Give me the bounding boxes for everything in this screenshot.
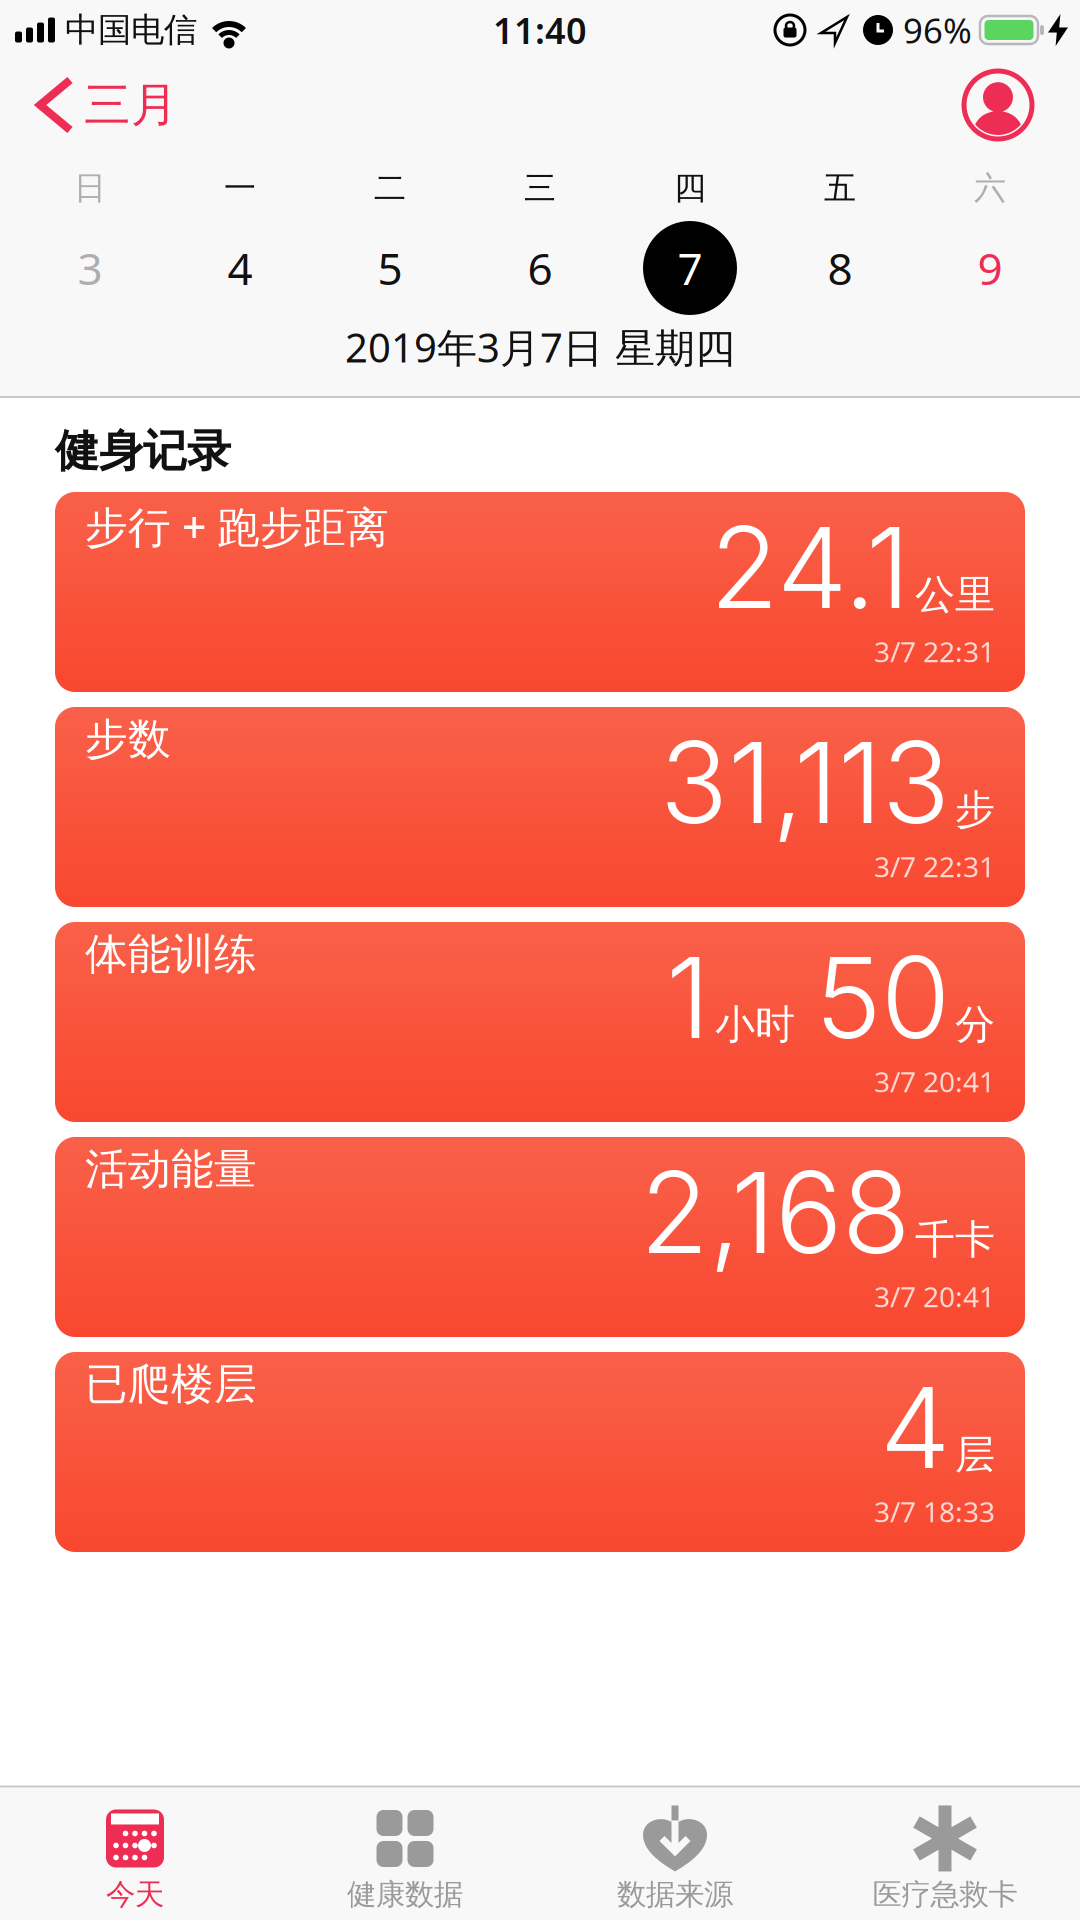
staticText: 2019年3月7日 星期四 <box>345 320 735 373</box>
button[interactable]: 7 <box>615 226 765 310</box>
button[interactable]: 5 <box>315 226 465 310</box>
button[interactable]: 今天 <box>0 1787 270 1912</box>
staticText: 数据来源 <box>617 1876 733 1912</box>
staticText: 8 <box>827 239 852 297</box>
staticText: 步行 + 跑步距离 <box>85 498 389 555</box>
staticText: 96% <box>903 7 972 53</box>
staticText: 50 <box>815 929 950 1065</box>
staticText: 3 <box>77 239 102 297</box>
staticText: 中国电信 <box>65 9 197 50</box>
staticText: 层 <box>955 1430 995 1479</box>
staticText: 公里 <box>915 570 995 619</box>
button[interactable]: 3 <box>15 226 165 310</box>
staticText: 五 <box>824 168 856 208</box>
staticText: 三月 <box>84 76 178 134</box>
staticText: 1 <box>666 929 710 1065</box>
staticText: 六 <box>974 168 1006 208</box>
staticText: 医疗急救卡 <box>872 1876 1017 1912</box>
button[interactable]: 8 <box>765 226 915 310</box>
staticText: 31,113 <box>660 714 950 850</box>
staticText: 3/7 22:31 <box>874 848 995 885</box>
button[interactable]: 6 <box>465 226 615 310</box>
staticText: 小时 <box>715 1000 795 1049</box>
staticText: 4 <box>227 239 252 297</box>
staticText: 9 <box>977 239 1002 297</box>
staticText: 3/7 18:33 <box>874 1493 995 1530</box>
staticText: 日 <box>74 168 106 208</box>
button[interactable]: 已爬楼层 <box>55 1352 1025 1552</box>
staticText: 5 <box>377 239 402 297</box>
staticText: 步数 <box>85 713 171 765</box>
button[interactable]: 数据来源 <box>540 1787 810 1912</box>
button[interactable]: 三月 <box>36 76 178 134</box>
staticText: 二 <box>374 168 406 208</box>
staticText: 24.1 <box>710 499 910 635</box>
staticText: 11:40 <box>493 6 587 54</box>
button[interactable]: 个人资料 <box>964 71 1032 139</box>
button[interactable]: 体能训练 <box>55 922 1025 1122</box>
button[interactable]: 步行 + 跑步距离 <box>55 492 1025 692</box>
staticText: 三 <box>524 168 556 208</box>
staticText: 7 <box>677 239 702 297</box>
staticText: 一 <box>224 168 256 208</box>
button[interactable]: 健康数据 <box>270 1787 540 1912</box>
button[interactable]: 活动能量 <box>55 1137 1025 1337</box>
staticText: 3/7 20:41 <box>874 1063 995 1100</box>
staticText: 已爬楼层 <box>85 1358 257 1410</box>
staticText: 体能训练 <box>85 928 257 980</box>
button[interactable]: 4 <box>165 226 315 310</box>
staticText: 步 <box>955 785 995 834</box>
staticText: 今天 <box>106 1876 164 1912</box>
staticText: 健康数据 <box>347 1876 463 1912</box>
staticText: 活动能量 <box>85 1143 257 1195</box>
staticText: 四 <box>674 168 706 208</box>
button[interactable]: 步数 <box>55 707 1025 907</box>
staticText: 分 <box>955 1000 995 1049</box>
staticText: 6 <box>527 239 552 297</box>
button[interactable]: 医疗急救卡 <box>810 1787 1080 1912</box>
staticText: 2,168 <box>640 1144 910 1280</box>
staticText: 健身记录 <box>55 424 231 478</box>
staticText: 3/7 22:31 <box>874 633 995 670</box>
button[interactable]: 9 <box>915 226 1065 310</box>
staticText: 4 <box>880 1359 950 1495</box>
staticText: 千卡 <box>915 1215 995 1264</box>
staticText: 3/7 20:41 <box>874 1278 995 1315</box>
